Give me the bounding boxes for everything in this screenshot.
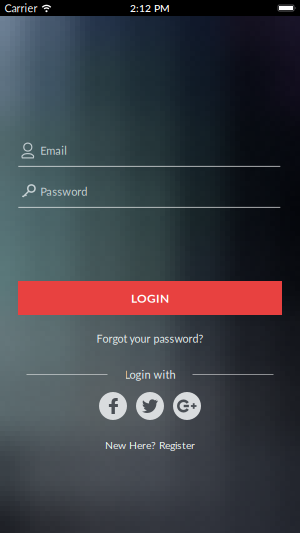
button[interactable]: Login with Google [173, 392, 201, 420]
staticText: New Here? Register [105, 439, 195, 451]
staticText: LOGIN [131, 291, 169, 305]
staticText: Carrier [4, 1, 37, 14]
button[interactable]: Forgot your password? [96, 332, 203, 345]
staticText: Login with [124, 368, 175, 381]
staticText: Password [40, 185, 87, 198]
staticText: Email [40, 144, 67, 157]
button[interactable]: Login with Twitter [136, 392, 164, 420]
button[interactable]: New Here? Register [105, 439, 195, 451]
button[interactable]: Login with Facebook [99, 392, 127, 420]
button[interactable]: Password [18, 182, 280, 208]
button[interactable]: LOGIN [18, 281, 282, 315]
button[interactable]: Email [18, 141, 280, 167]
staticText: 2:12 PM [130, 2, 170, 14]
staticText: Forgot your password? [96, 332, 203, 345]
